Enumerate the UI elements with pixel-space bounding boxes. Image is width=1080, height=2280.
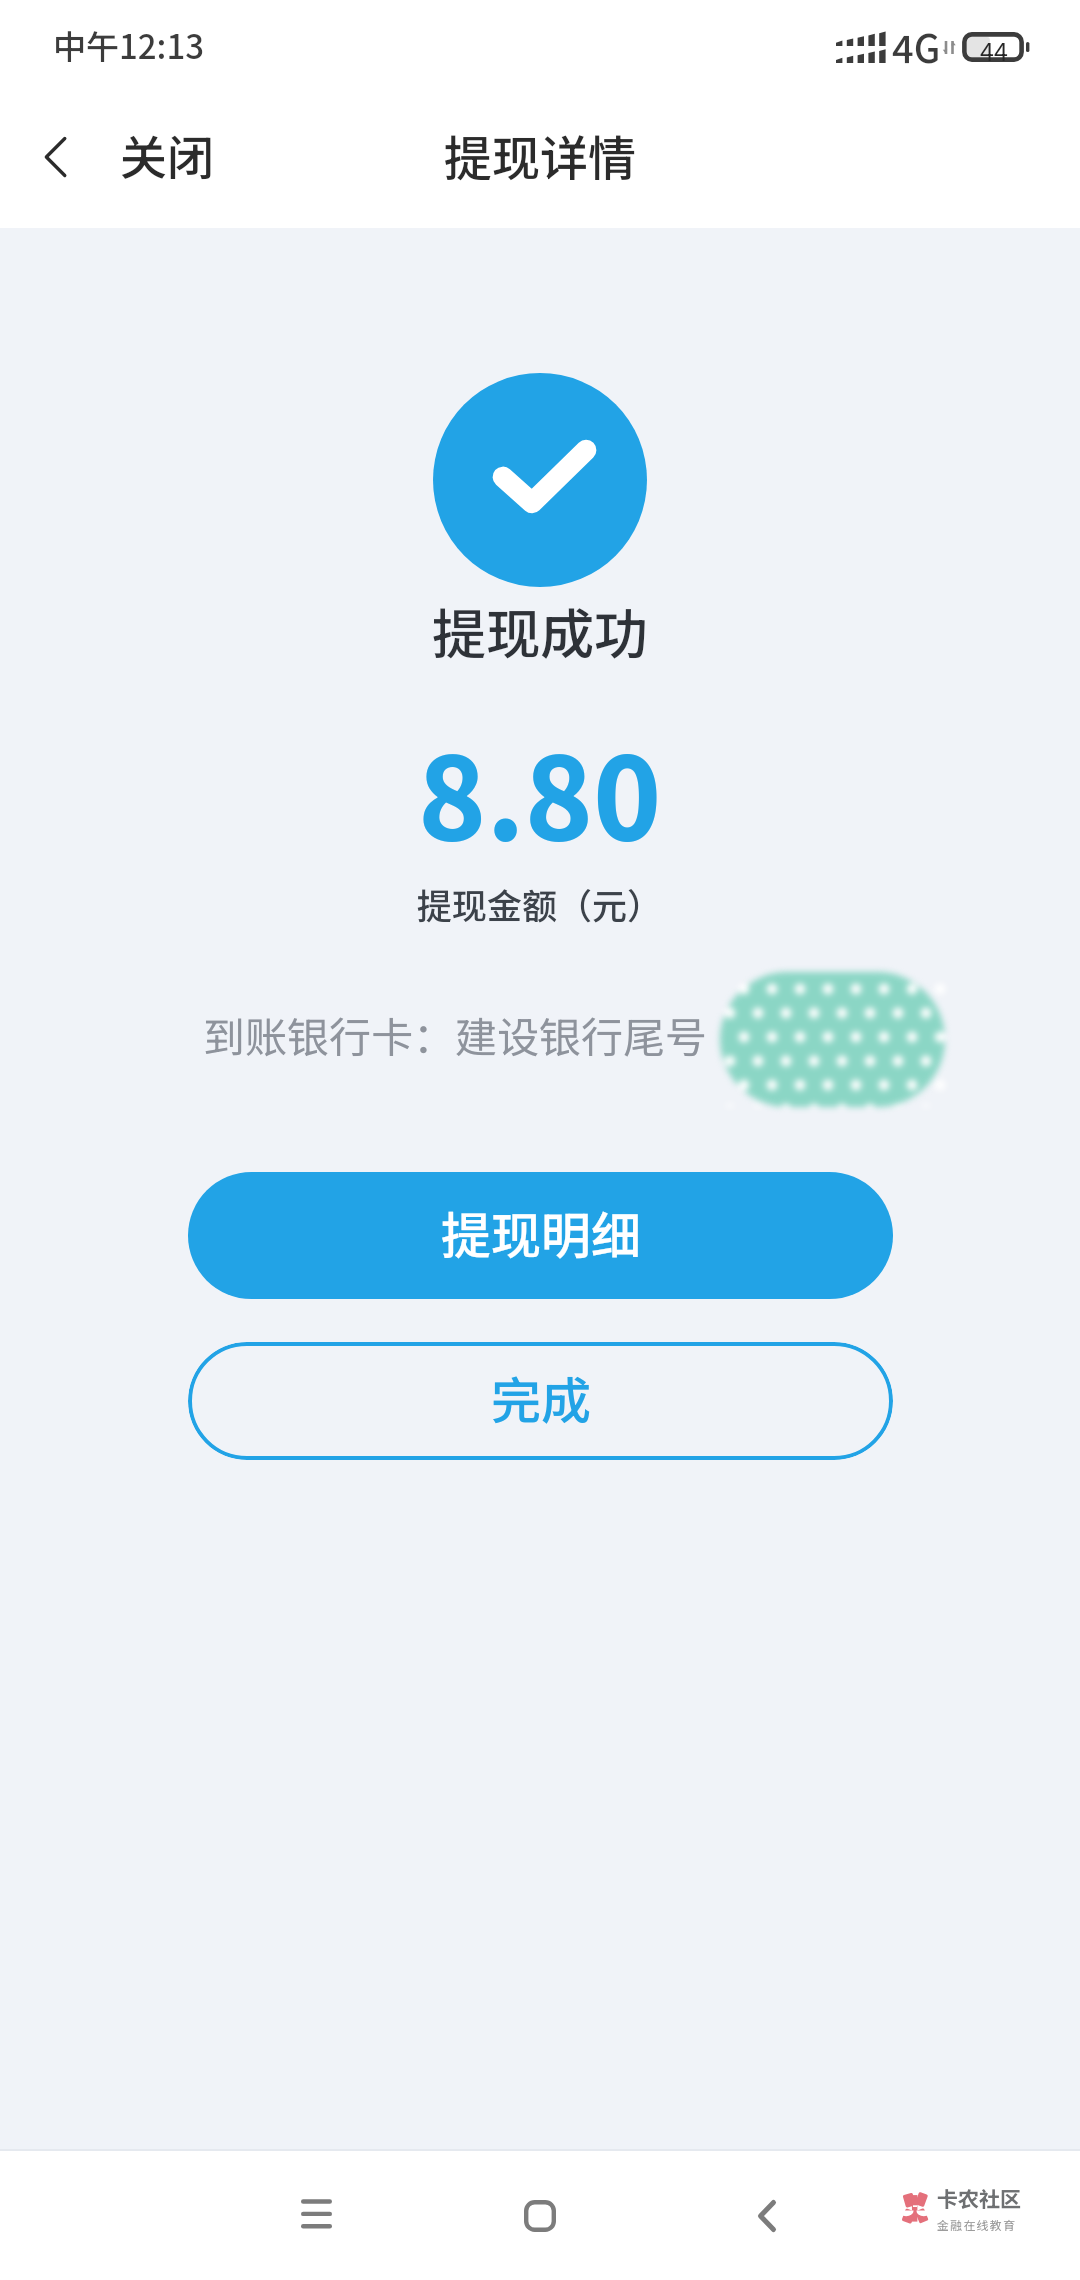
button[interactable]: 提现明细 bbox=[188, 1172, 893, 1299]
staticText: 8.80 bbox=[418, 708, 662, 873]
button[interactable]: Back bbox=[0, 98, 240, 210]
staticText: 4G bbox=[892, 19, 941, 74]
button[interactable]: Back bbox=[707, 2156, 827, 2276]
staticText: 卡农社区 bbox=[937, 2183, 1021, 2213]
staticText: 中午12:13 bbox=[53, 21, 205, 69]
button[interactable]: 完成 bbox=[188, 1342, 893, 1460]
staticText: 提现金额（元） bbox=[417, 878, 663, 929]
staticText: 提现详情 bbox=[444, 120, 637, 190]
staticText: 金融在线教育 bbox=[937, 2216, 1017, 2233]
button[interactable]: Recent apps bbox=[256, 2154, 376, 2274]
staticText: 完成 bbox=[491, 1361, 591, 1433]
staticText: 到账银行卡：建设银行尾号 bbox=[203, 1004, 708, 1065]
staticText: 关闭 bbox=[120, 120, 214, 188]
staticText: 提现成功 bbox=[432, 591, 648, 669]
other: Signal strength bbox=[836, 29, 877, 64]
button[interactable]: Home bbox=[480, 2156, 600, 2276]
staticText: 提现明细 bbox=[441, 1196, 641, 1268]
other: Battery 44 percent bbox=[962, 32, 1029, 62]
other: Back bbox=[34, 135, 78, 179]
staticText: 44 bbox=[980, 32, 1008, 62]
